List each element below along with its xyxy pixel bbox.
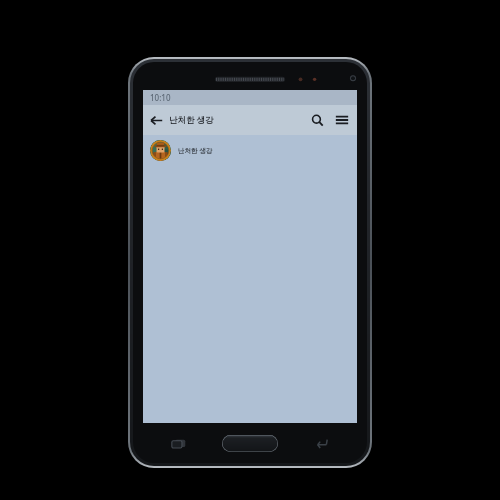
staticText: 난처한 생강 bbox=[178, 146, 213, 155]
button[interactable]: Back bbox=[143, 105, 169, 135]
button[interactable]: Menu bbox=[329, 105, 355, 135]
staticText: 10:10 bbox=[150, 92, 171, 103]
button[interactable]: Home bbox=[222, 435, 278, 452]
button[interactable]: Recent apps bbox=[133, 423, 222, 463]
button[interactable]: Back bbox=[278, 423, 367, 463]
staticText: 난처한 생강 bbox=[169, 114, 214, 126]
button[interactable]: 난처한 생강 bbox=[143, 135, 357, 165]
button[interactable]: Search bbox=[305, 105, 329, 135]
